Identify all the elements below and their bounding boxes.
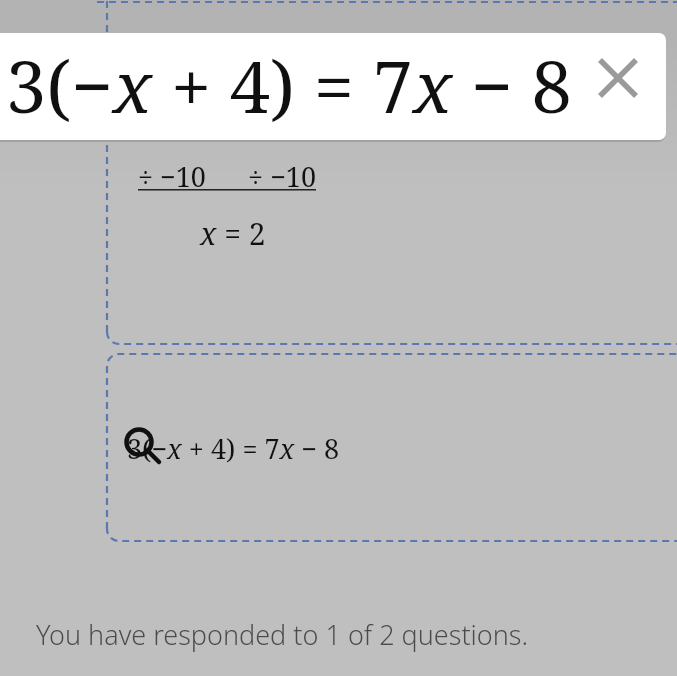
button[interactable]: Zoom equation [121, 424, 161, 464]
staticText: 3(−x + 4) = 7x − 8 [6, 36, 572, 134]
staticText: 3(−x + 4) = 7x − 8 [127, 430, 340, 467]
staticText: x = 2 [200, 213, 266, 254]
button[interactable]: Close [595, 55, 641, 101]
staticText: You have responded to 1 of 2 questions. [36, 616, 529, 653]
button[interactable]: 3(−x + 4) = 7x − 8 [0, 33, 666, 140]
staticText: ÷ −10 ÷ −10 [138, 158, 316, 195]
